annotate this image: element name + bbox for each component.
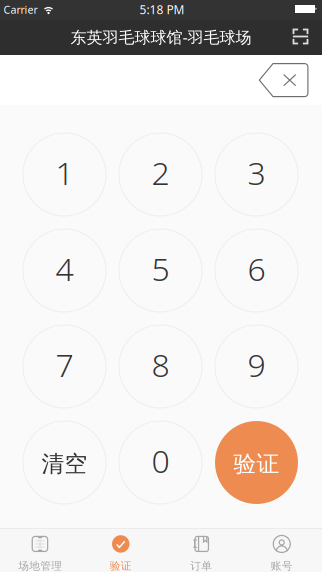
staticText: 0 (151, 439, 169, 482)
button[interactable]: 验证 (215, 421, 298, 504)
button[interactable]: 验证 (80, 526, 161, 572)
button[interactable]: 9 (215, 325, 298, 408)
button[interactable]: 4 (23, 229, 106, 312)
staticText: 清空 (41, 450, 87, 478)
staticText: Carrier (3, 2, 37, 17)
staticText: 验证 (110, 559, 132, 572)
button[interactable]: 5 (119, 229, 202, 312)
button[interactable]: 订单 (161, 526, 241, 572)
button[interactable]: 7 (23, 325, 106, 408)
button[interactable]: Scan (283, 19, 319, 54)
button[interactable]: 2 (119, 133, 202, 216)
button[interactable]: 1 (23, 133, 106, 216)
staticText: 5:18 PM (139, 1, 184, 17)
staticText: 订单 (190, 559, 212, 572)
button[interactable]: 场地管理 (0, 526, 80, 572)
staticText: 9 (247, 343, 265, 386)
staticText: 4 (55, 247, 73, 290)
staticText: 3 (247, 151, 265, 194)
button[interactable]: 清空 (23, 421, 106, 504)
staticText: 东英羽毛球球馆-羽毛球场 (70, 26, 251, 48)
staticText: 场地管理 (18, 559, 62, 572)
staticText: 验证 (233, 450, 279, 478)
staticText: 2 (151, 151, 169, 194)
button[interactable]: 8 (119, 325, 202, 408)
button[interactable]: 账号 (241, 526, 322, 572)
button[interactable]: 3 (215, 133, 298, 216)
staticText: 8 (151, 343, 169, 386)
staticText: 1 (55, 151, 73, 194)
staticText: 7 (55, 343, 73, 386)
button[interactable]: Delete (254, 58, 314, 102)
button[interactable]: 0 (119, 421, 202, 504)
staticText: 账号 (271, 559, 293, 572)
staticText: 6 (247, 247, 265, 290)
staticText: 5 (151, 247, 169, 290)
button[interactable]: 6 (215, 229, 298, 312)
